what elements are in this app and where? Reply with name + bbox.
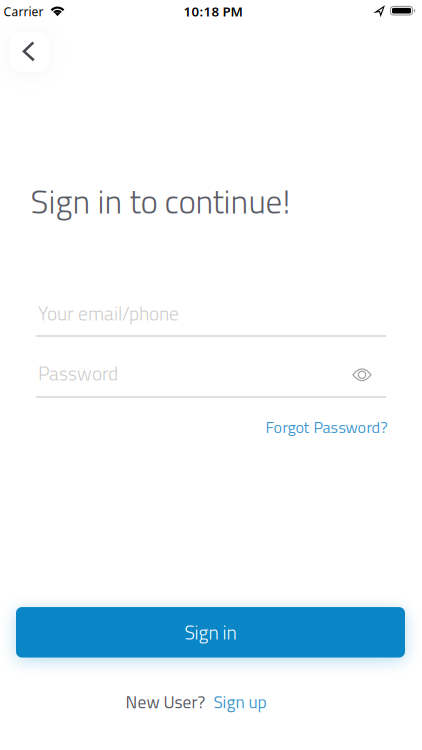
staticText: 10:18 PM [183,2,242,20]
staticText: Forgot Password? [265,415,387,439]
staticText: Sign up [213,689,266,715]
staticText: Sign in [184,618,236,647]
button[interactable]: Back [19,39,39,63]
staticText: Password [38,359,118,388]
button[interactable]: Show password [347,363,377,387]
button[interactable]: Forgot Password? [265,415,387,439]
staticText: Carrier [3,3,43,19]
button[interactable]: Sign up [213,689,266,715]
staticText: New User? [125,689,205,715]
staticText: Sign in to continue! [30,176,290,226]
staticText: Your email/phone [38,298,179,328]
button[interactable]: Sign in [16,607,405,657]
